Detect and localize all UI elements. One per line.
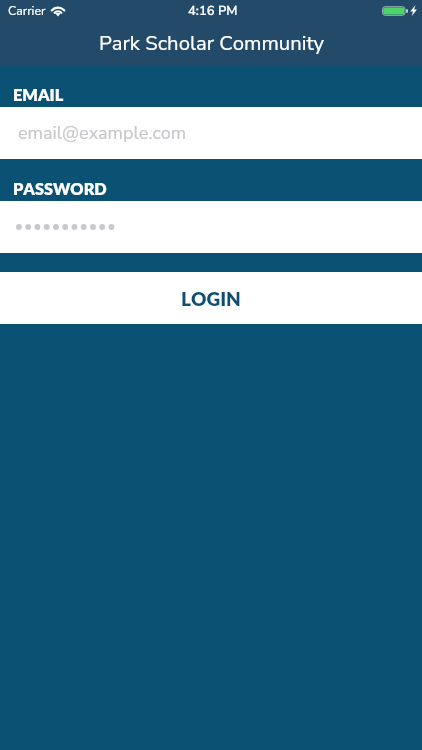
button[interactable]: LOGIN [0, 272, 422, 324]
staticText: EMAIL [13, 85, 64, 105]
other: Battery charging [382, 6, 408, 16]
button[interactable]: Email field [0, 107, 422, 159]
staticText: 4:16 PM [188, 2, 238, 20]
button[interactable]: Password field [0, 201, 422, 253]
staticText: LOGIN [181, 287, 241, 310]
other: Wi-Fi signal [51, 5, 65, 19]
staticText: Carrier [8, 3, 46, 20]
staticText: PASSWORD [13, 179, 107, 199]
staticText: Park Scholar Community [99, 29, 325, 57]
staticText: email@example.com [18, 121, 187, 146]
